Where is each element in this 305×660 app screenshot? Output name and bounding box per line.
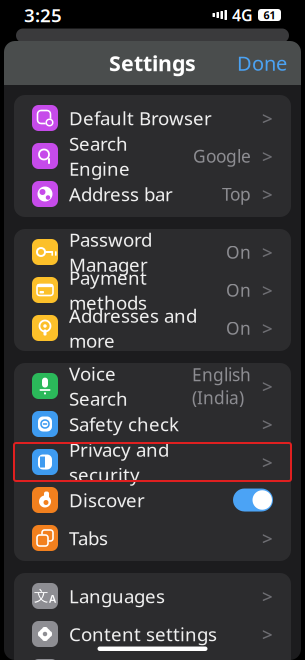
staticText: 61	[263, 8, 275, 22]
button[interactable]: Addresses and more	[14, 309, 291, 347]
staticText: >	[262, 144, 273, 168]
staticText: On	[226, 240, 251, 263]
staticText: 4G	[232, 4, 253, 26]
button[interactable]: Content settings	[14, 615, 291, 653]
staticText: >	[262, 278, 273, 302]
staticText: Content settings	[69, 622, 217, 646]
staticText: Voice Search	[69, 361, 128, 411]
staticText: Discover	[69, 488, 145, 512]
button[interactable]: Safety check	[14, 405, 291, 443]
staticText: Search Engine	[69, 131, 130, 181]
button[interactable]: Search Engine	[14, 137, 291, 175]
button[interactable]: Tabs	[14, 519, 291, 557]
staticText: On	[226, 278, 251, 301]
staticText: Done	[237, 50, 287, 76]
staticText: Password Manager	[69, 227, 152, 277]
button[interactable]: Address bar	[14, 175, 291, 213]
staticText: >	[262, 526, 273, 550]
button[interactable]: Voice Search	[14, 367, 291, 405]
button[interactable]: Payment methods	[14, 271, 291, 309]
staticText: Payment methods	[69, 265, 147, 315]
staticText: A	[49, 591, 56, 606]
staticText: Safety check	[69, 412, 179, 436]
staticText: Top	[222, 182, 251, 205]
staticText: Privacy and security	[69, 437, 169, 487]
staticText: Address bar	[69, 182, 173, 206]
staticText: >	[262, 622, 273, 646]
button[interactable]: Privacy and security	[14, 443, 291, 481]
button[interactable]: Discover	[14, 481, 291, 519]
staticText: Tabs	[69, 526, 108, 550]
staticText: >	[262, 450, 273, 474]
staticText: 3:25	[24, 3, 62, 27]
staticText: >	[262, 106, 273, 130]
staticText: >	[262, 412, 273, 436]
staticText: On	[226, 316, 251, 339]
staticText: Default Browser	[69, 106, 212, 130]
staticText: >	[262, 240, 273, 264]
staticText: >	[262, 316, 273, 340]
button[interactable]: Done	[223, 41, 301, 85]
staticText: Google	[193, 144, 251, 167]
button[interactable]: 文	[14, 577, 291, 615]
staticText: Settings	[109, 49, 196, 77]
staticText: >	[262, 182, 273, 206]
staticText: English (India)	[192, 363, 251, 409]
button[interactable]: Downloads	[14, 653, 291, 660]
staticText: Addresses and more	[69, 303, 197, 353]
staticText: Languages	[69, 584, 165, 608]
staticText: >	[262, 584, 273, 608]
staticText: 文	[34, 587, 49, 605]
button[interactable]: Default Browser	[14, 99, 291, 137]
staticText: >	[262, 374, 273, 398]
button[interactable]: Password Manager	[14, 233, 291, 271]
